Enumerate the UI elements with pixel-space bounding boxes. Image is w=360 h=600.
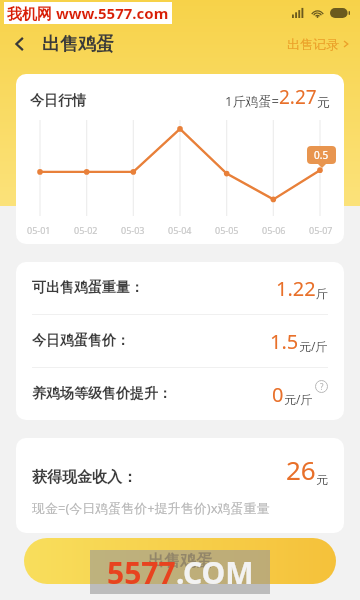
- staticText: 斤: [316, 286, 328, 301]
- staticText: 获得现金收入：: [32, 468, 137, 487]
- staticText: 2.27: [279, 84, 317, 110]
- staticText: 元: [317, 94, 330, 110]
- staticText: 今日行情: [30, 92, 86, 110]
- staticText: 5577: [107, 552, 176, 593]
- staticText: 05-01: [27, 224, 51, 236]
- staticText: 养鸡场等级售价提升：: [32, 385, 172, 403]
- staticText: 05-02: [74, 224, 98, 236]
- button[interactable]: 出售鸡蛋: [24, 538, 336, 584]
- button[interactable]: Help: [315, 380, 328, 393]
- staticText: 0: [272, 381, 284, 408]
- staticText: .COM: [176, 552, 254, 593]
- staticText: 05-04: [168, 224, 192, 236]
- staticText: 可出售鸡蛋重量：: [32, 279, 144, 297]
- staticText: 05-07: [309, 224, 333, 236]
- staticText: 0.5: [314, 148, 329, 162]
- staticText: 出售鸡蛋: [148, 551, 212, 571]
- staticText: ?: [320, 381, 324, 392]
- staticText: 出售鸡蛋: [42, 33, 114, 56]
- button[interactable]: 可出售鸡蛋重量：: [16, 262, 344, 314]
- staticText: 1.5: [270, 328, 299, 355]
- staticText: 元: [316, 472, 328, 487]
- staticText: 现金=(今日鸡蛋售价+提升售价)x鸡蛋重量: [32, 499, 270, 517]
- staticText: 1斤鸡蛋=: [225, 92, 279, 110]
- staticText: 元/斤: [284, 391, 313, 407]
- button[interactable]: Back: [0, 26, 40, 62]
- button[interactable]: 出售记录: [277, 30, 360, 58]
- staticText: 26: [286, 452, 316, 487]
- button[interactable]: 养鸡场等级售价提升：: [16, 368, 344, 420]
- button[interactable]: 今日鸡蛋售价：: [16, 315, 344, 367]
- staticText: 05-05: [215, 224, 239, 236]
- staticText: 05-06: [262, 224, 286, 236]
- staticText: 05-03: [121, 224, 145, 236]
- staticText: 1.22: [276, 275, 316, 302]
- staticText: 今日鸡蛋售价：: [32, 332, 130, 350]
- staticText: 出售记录: [287, 36, 339, 52]
- staticText: 元/斤: [299, 338, 328, 354]
- staticText: 我机网 www.5577.com: [7, 3, 169, 23]
